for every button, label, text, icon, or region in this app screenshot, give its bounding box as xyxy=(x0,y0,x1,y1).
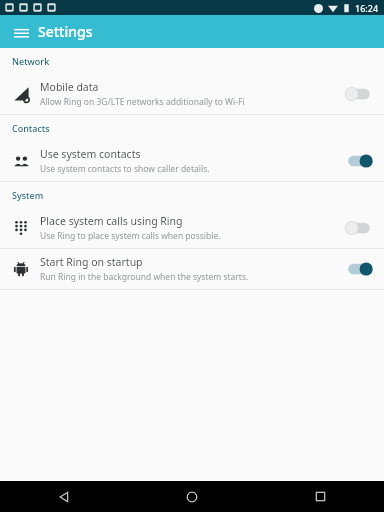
button[interactable]: Open navigation menu xyxy=(8,19,34,45)
staticText: Place system calls using Ring xyxy=(40,214,183,228)
button[interactable]: Back xyxy=(0,481,128,512)
button[interactable]: Toggle, on xyxy=(344,259,374,279)
button[interactable]: Toggle, on xyxy=(344,151,374,171)
staticText: Run Ring in the background when the syst… xyxy=(40,271,249,283)
staticText: Start Ring on startup xyxy=(40,255,143,269)
button[interactable]: Place system calls using Ring xyxy=(0,208,384,248)
button[interactable]: Toggle, off xyxy=(344,84,374,104)
staticText: Use system contacts to show caller detai… xyxy=(40,163,210,175)
button[interactable]: Use system contacts xyxy=(0,141,384,181)
staticText: Settings xyxy=(38,22,93,41)
button[interactable]: Recent apps xyxy=(256,481,384,512)
staticText: Network xyxy=(12,55,50,67)
button[interactable]: Mobile data xyxy=(0,74,384,114)
staticText: Use Ring to place system calls when poss… xyxy=(40,230,221,242)
button[interactable]: Home xyxy=(128,481,256,512)
staticText: Contacts xyxy=(12,122,50,134)
staticText: Use system contacts xyxy=(40,147,141,161)
staticText: Allow Ring on 3G/LTE networks additional… xyxy=(40,96,245,108)
button[interactable]: Toggle, off xyxy=(344,218,374,238)
staticText: 16:24 xyxy=(355,2,379,14)
staticText: Mobile data xyxy=(40,80,99,94)
staticText: System xyxy=(12,189,44,201)
button[interactable]: Start Ring on startup xyxy=(0,249,384,289)
